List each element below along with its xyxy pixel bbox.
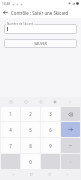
staticText: SAUVER — [34, 41, 47, 46]
staticText: 3 — [49, 111, 52, 117]
staticText: 8 — [29, 143, 32, 149]
button[interactable]: Home — [45, 170, 54, 179]
button[interactable]: Recents — [27, 170, 36, 179]
button[interactable]: Numéro de Skicard — [4, 22, 77, 34]
button[interactable]: 2 — [21, 107, 40, 121]
button[interactable]: Next — [61, 122, 80, 137]
staticText: 6 — [49, 127, 52, 133]
button[interactable]: GIF — [22, 98, 30, 106]
staticText: 0 — [29, 159, 32, 165]
button[interactable]: 5 — [21, 122, 40, 137]
button[interactable]: Dash — [61, 138, 80, 153]
button[interactable]: 1 — [1, 107, 20, 121]
staticText: 1 — [9, 111, 12, 117]
button[interactable]: 0 — [21, 154, 40, 169]
staticText: Numéro de Skicard — [7, 22, 33, 26]
staticText: 5 — [29, 127, 32, 133]
button[interactable]: Settings — [51, 98, 59, 106]
staticText: 7 — [9, 143, 12, 149]
button[interactable]: Clipboard — [37, 98, 45, 106]
staticText: 9 — [49, 143, 52, 149]
button[interactable]: Emoji — [7, 98, 15, 106]
button[interactable]: SAUVER — [4, 39, 77, 48]
button[interactable]: 3 — [41, 107, 60, 121]
button[interactable]: 7 — [1, 138, 20, 153]
button[interactable]: 4 — [1, 122, 20, 137]
button[interactable]: Backspace — [61, 107, 80, 121]
staticText: 4 — [9, 127, 12, 133]
button[interactable]: Back — [0, 7, 11, 18]
button[interactable]: 9 — [41, 138, 60, 153]
button[interactable]: 6 — [41, 122, 60, 137]
staticText: Contrôle : Saisir une Skicard — [11, 10, 69, 16]
staticText: 2 — [29, 111, 32, 117]
staticText: 14:48 — [2, 2, 11, 6]
button[interactable]: 8 — [21, 138, 40, 153]
